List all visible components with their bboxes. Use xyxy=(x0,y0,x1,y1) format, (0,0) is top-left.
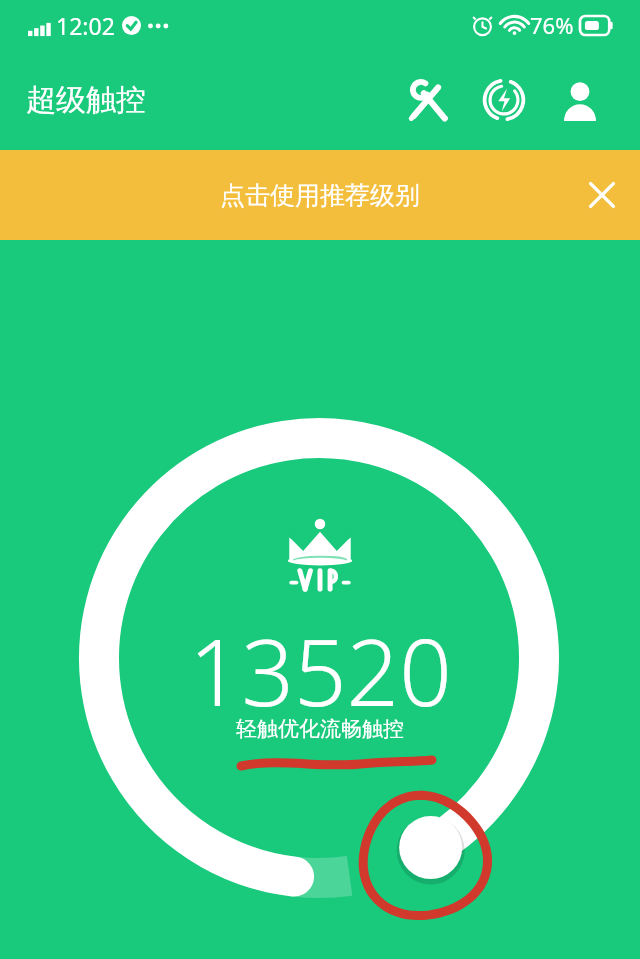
button[interactable]: Tools xyxy=(390,62,466,138)
staticText: 超级触控 xyxy=(26,81,146,119)
button[interactable] xyxy=(0,0,640,959)
button[interactable]: Profile xyxy=(542,62,618,138)
button[interactable]: Close xyxy=(564,157,640,233)
staticText: 轻触优化流畅触控 xyxy=(236,716,404,742)
button[interactable]: Boost xyxy=(466,62,542,138)
staticText: 12:02 xyxy=(56,10,115,41)
staticText: 13520 xyxy=(189,608,452,733)
staticText: 点击使用推荐级别 xyxy=(220,180,420,211)
button[interactable]: 点击使用推荐级别 xyxy=(0,150,640,240)
staticText: 76% xyxy=(530,10,574,40)
